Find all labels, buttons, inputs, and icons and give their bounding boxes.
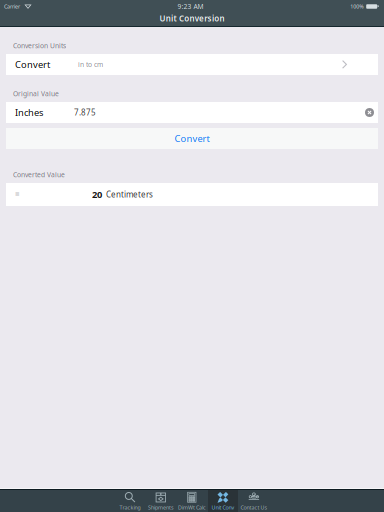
staticText: Convert [15, 58, 50, 71]
button[interactable]: Convert [6, 54, 378, 75]
staticText: Centimeters [106, 189, 153, 200]
button[interactable]: Shipments [146, 490, 176, 512]
button[interactable]: Clear text [364, 107, 375, 118]
staticText: 20 [92, 188, 102, 201]
staticText: Shipments [148, 504, 174, 511]
button[interactable]: Convert [6, 128, 378, 149]
staticText: 9:23 AM [178, 2, 204, 11]
button[interactable]: Tracking [115, 490, 145, 512]
staticText: in to cm [78, 60, 103, 69]
button[interactable]: DimWt Calc [177, 490, 207, 512]
button[interactable]: Unit Conv [208, 490, 238, 512]
staticText: Carrier [4, 3, 20, 10]
staticText: DimWt Calc [178, 504, 206, 511]
button[interactable]: Contact Us [239, 490, 269, 512]
staticText: = [15, 189, 20, 200]
staticText: Tracking [119, 504, 140, 511]
staticText: Contact Us [240, 504, 267, 511]
staticText: 100% [350, 3, 363, 10]
staticText: 7.875 [74, 107, 96, 118]
staticText: Convert [174, 132, 209, 145]
staticText: Original Value [13, 89, 59, 98]
staticText: Unit Conversion [159, 13, 224, 24]
staticText: Inches [15, 106, 43, 119]
staticText: Unit Conv [211, 504, 234, 511]
staticText: Converted Value [13, 170, 65, 179]
staticText: Conversion Units [13, 41, 66, 50]
